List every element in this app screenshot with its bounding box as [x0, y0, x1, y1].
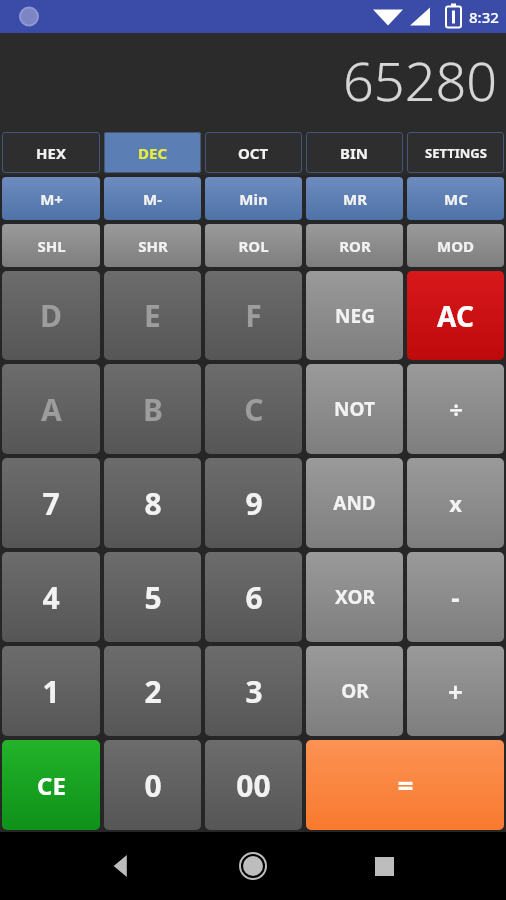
- staticText: MR: [343, 189, 367, 209]
- button[interactable]: Minus: [407, 552, 504, 642]
- button[interactable]: A: [2, 364, 100, 454]
- staticText: +: [448, 674, 463, 709]
- button[interactable]: SHR: [104, 224, 201, 267]
- staticText: 00: [236, 765, 271, 806]
- staticText: OCT: [238, 143, 269, 163]
- button[interactable]: 6: [205, 552, 302, 642]
- staticText: BIN: [340, 143, 369, 163]
- button[interactable]: M-: [104, 177, 201, 220]
- button[interactable]: SETTINGS: [407, 132, 504, 173]
- button[interactable]: 7: [2, 458, 100, 548]
- button[interactable]: MOD: [407, 224, 504, 267]
- staticText: ROL: [238, 236, 269, 256]
- staticText: SHR: [138, 236, 168, 256]
- button[interactable]: Recent apps: [360, 842, 408, 890]
- button[interactable]: NOT: [306, 364, 403, 454]
- staticText: XOR: [335, 584, 375, 610]
- button[interactable]: OCT: [205, 132, 302, 173]
- staticText: D: [40, 295, 62, 336]
- staticText: SHL: [37, 236, 66, 256]
- button[interactable]: NEG: [306, 271, 403, 360]
- button[interactable]: E: [104, 271, 201, 360]
- staticText: 2: [144, 671, 162, 712]
- staticText: 3: [245, 671, 263, 712]
- button[interactable]: Multiply: [407, 458, 504, 548]
- staticText: ÷: [449, 393, 463, 426]
- staticText: ROR: [339, 236, 371, 256]
- button[interactable]: ROR: [306, 224, 403, 267]
- staticText: MC: [444, 189, 468, 209]
- staticText: CE: [37, 769, 66, 802]
- button[interactable]: ROL: [205, 224, 302, 267]
- button[interactable]: AC: [407, 271, 504, 360]
- button[interactable]: MC: [407, 177, 504, 220]
- staticText: 1: [42, 671, 60, 712]
- staticText: 8:32: [469, 7, 499, 27]
- button[interactable]: 1: [2, 646, 100, 736]
- staticText: 9: [245, 483, 263, 524]
- staticText: E: [144, 295, 161, 336]
- button[interactable]: Equals: [306, 740, 504, 830]
- staticText: 4: [42, 577, 60, 618]
- button[interactable]: 4: [2, 552, 100, 642]
- button[interactable]: BIN: [306, 132, 403, 173]
- button[interactable]: Plus: [407, 646, 504, 736]
- button[interactable]: 00: [205, 740, 302, 830]
- staticText: NEG: [335, 303, 375, 329]
- staticText: B: [143, 389, 163, 430]
- button[interactable]: CE: [2, 740, 100, 830]
- button[interactable]: 0: [104, 740, 201, 830]
- button[interactable]: Home: [229, 842, 277, 890]
- staticText: AND: [333, 490, 376, 516]
- staticText: M+: [40, 189, 63, 209]
- button[interactable]: XOR: [306, 552, 403, 642]
- button[interactable]: F: [205, 271, 302, 360]
- button[interactable]: SHL: [2, 224, 100, 267]
- button[interactable]: Back: [98, 842, 146, 890]
- staticText: A: [41, 389, 62, 430]
- button[interactable]: 2: [104, 646, 201, 736]
- staticText: OR: [341, 678, 369, 704]
- button[interactable]: B: [104, 364, 201, 454]
- button[interactable]: 5: [104, 552, 201, 642]
- button[interactable]: DEC: [104, 132, 201, 173]
- staticText: AC: [437, 297, 474, 335]
- staticText: M-: [143, 189, 162, 209]
- staticText: C: [244, 389, 264, 430]
- staticText: HEX: [36, 143, 66, 163]
- staticText: 8: [144, 483, 162, 524]
- staticText: 7: [42, 483, 60, 524]
- staticText: 5: [144, 577, 162, 618]
- button[interactable]: AND: [306, 458, 403, 548]
- staticText: -: [451, 580, 460, 615]
- button[interactable]: 9: [205, 458, 302, 548]
- staticText: Min: [239, 189, 268, 209]
- button[interactable]: Min: [205, 177, 302, 220]
- button[interactable]: M+: [2, 177, 100, 220]
- staticText: 65280: [343, 43, 498, 117]
- button[interactable]: C: [205, 364, 302, 454]
- staticText: NOT: [334, 396, 375, 422]
- staticText: 6: [245, 577, 263, 618]
- staticText: DEC: [138, 143, 168, 163]
- staticText: =: [397, 766, 414, 804]
- button[interactable]: OR: [306, 646, 403, 736]
- staticText: F: [245, 295, 262, 336]
- staticText: SETTINGS: [425, 144, 487, 162]
- button[interactable]: 8: [104, 458, 201, 548]
- button[interactable]: Divide: [407, 364, 504, 454]
- button[interactable]: 3: [205, 646, 302, 736]
- staticText: 0: [144, 765, 162, 806]
- staticText: x: [449, 488, 462, 518]
- button[interactable]: MR: [306, 177, 403, 220]
- button[interactable]: HEX: [2, 132, 100, 173]
- staticText: MOD: [437, 236, 474, 256]
- button[interactable]: D: [2, 271, 100, 360]
